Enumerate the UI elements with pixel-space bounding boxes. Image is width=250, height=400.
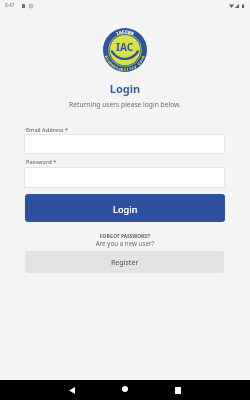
staticText: Login (113, 203, 138, 216)
staticText: Returning users please login below. (0, 100, 250, 109)
button[interactable]: Register (25, 251, 224, 273)
staticText: Email Address * (26, 126, 69, 134)
button[interactable]: Back (62, 380, 82, 400)
button[interactable] (24, 134, 225, 154)
button[interactable]: FORGOT PASSWORD? (0, 233, 250, 240)
staticText: Password * (26, 158, 57, 166)
button[interactable]: Home (115, 379, 135, 399)
staticText: Login (0, 81, 250, 96)
staticText: Register (111, 258, 139, 267)
button[interactable] (24, 167, 225, 188)
staticText: Are you a new user? (0, 239, 250, 248)
button[interactable]: Recent apps (168, 380, 188, 400)
staticText: 8:47 (5, 2, 15, 9)
button[interactable]: Login (25, 194, 225, 222)
